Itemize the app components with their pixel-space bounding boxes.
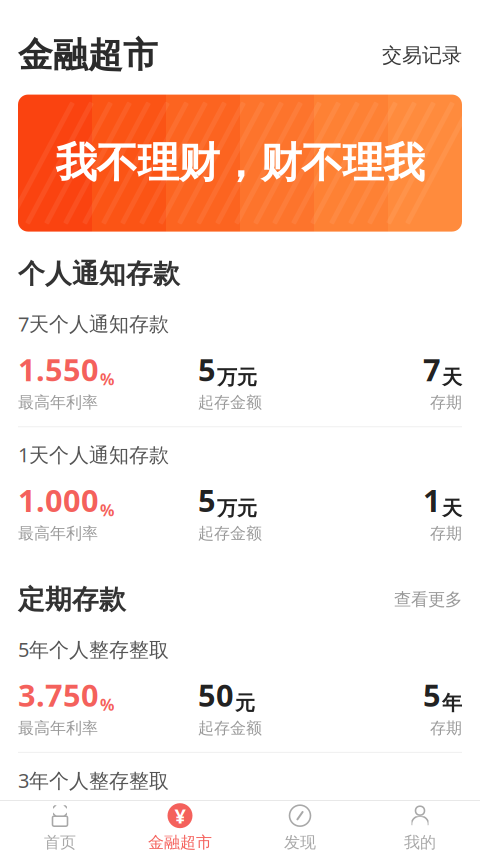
staticText: 最高年利率 (18, 393, 98, 412)
button[interactable]: 查看更多 (394, 589, 462, 610)
button[interactable]: 发现 (240, 797, 360, 854)
staticText: 1天个人通知存款 (18, 441, 169, 468)
staticText: 3.750 (18, 674, 99, 715)
staticText: 存期 (430, 718, 462, 738)
staticText: % (100, 499, 114, 520)
staticText: 金融超市 (148, 833, 212, 852)
button[interactable]: 我的 (360, 797, 480, 854)
button[interactable]: 交易记录 (382, 43, 462, 68)
staticText: 7天个人通知存款 (18, 310, 169, 337)
staticText: 发现 (284, 833, 316, 852)
staticText: 首页 (44, 833, 76, 852)
staticText: 万元 (217, 365, 257, 390)
staticText: 3年个人整存整取 (18, 767, 169, 793)
staticText: 金融超市 (18, 34, 158, 77)
staticText: 5 (423, 674, 441, 715)
staticText: 年 (442, 691, 462, 715)
staticText: 最高年利率 (18, 524, 98, 543)
staticText: 查看更多 (394, 589, 462, 610)
staticText: 1.550 (18, 349, 99, 390)
staticText: 存期 (430, 393, 462, 412)
staticText: 起存金额 (198, 524, 262, 543)
button[interactable]: 7天个人通知存款 (0, 296, 480, 426)
staticText: 5 (198, 480, 216, 520)
staticText: 最高年利率 (18, 718, 98, 738)
staticText: 定期存款 (18, 583, 126, 616)
staticText: 存期 (430, 524, 462, 543)
staticText: 天 (442, 496, 462, 521)
staticText: ¥ (174, 802, 185, 829)
staticText: 起存金额 (198, 393, 262, 412)
staticText: 我的 (404, 833, 436, 852)
staticText: 交易记录 (382, 43, 462, 68)
staticText: 7 (423, 349, 441, 390)
staticText: 元 (235, 691, 255, 715)
button[interactable]: 1天个人通知存款 (0, 427, 480, 557)
staticText: 天 (442, 365, 462, 390)
staticText: 1 (423, 480, 441, 520)
staticText: 5 (198, 349, 216, 390)
staticText: 个人通知存款 (18, 258, 180, 290)
staticText: 我不理财，财不理我 (55, 138, 424, 188)
staticText: % (100, 694, 114, 715)
button[interactable]: 5年个人整存整取 (0, 622, 480, 752)
button[interactable]: 我不理财，财不理我 (18, 95, 462, 232)
staticText: % (100, 368, 114, 390)
button[interactable]: 首页 (0, 797, 120, 854)
staticText: 万元 (217, 496, 257, 521)
button[interactable]: ¥ (120, 797, 240, 854)
staticText: 起存金额 (198, 718, 262, 738)
staticText: 50 (198, 674, 234, 715)
staticText: 5年个人整存整取 (18, 636, 169, 663)
staticText: 1.000 (18, 480, 99, 520)
